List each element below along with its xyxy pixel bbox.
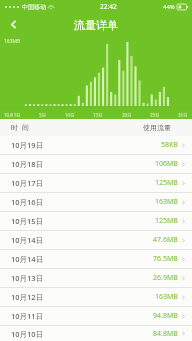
staticText: 10月16日 [11, 197, 44, 207]
staticText: 76.5MB [153, 254, 178, 264]
staticText: 22:42 [100, 2, 117, 11]
staticText: 5日 [39, 112, 47, 118]
button[interactable]: 10月13日 [0, 269, 192, 287]
staticText: 125MB [155, 216, 178, 226]
staticText: 20日 [122, 112, 132, 118]
staticText: 15日 [93, 112, 103, 118]
staticText: 163MB [155, 292, 178, 302]
staticText: 10月15日 [11, 216, 44, 226]
staticText: 中国移动 [22, 3, 46, 11]
staticText: 163MB [4, 38, 21, 45]
button[interactable]: 10月19日 [0, 136, 192, 154]
staticText: 10月11日 [11, 311, 44, 321]
button[interactable]: 10月16日 [0, 193, 192, 211]
staticText: 10日 [65, 112, 75, 118]
staticText: 84.8MB [153, 329, 178, 339]
staticText: 31日 [178, 112, 188, 118]
button[interactable]: 10月11日 [0, 307, 192, 325]
button[interactable]: 10月14日 [0, 250, 192, 268]
button[interactable]: 10月15日 [0, 212, 192, 230]
staticText: 时 间 [11, 123, 29, 133]
staticText: 58KB [161, 140, 178, 150]
staticText: 流量详单 [74, 18, 118, 32]
staticText: 10月12日 [11, 292, 44, 302]
staticText: 使用流量 [143, 123, 171, 132]
button[interactable]: 10月17日 [0, 174, 192, 192]
staticText: 106MB [155, 159, 178, 169]
button[interactable]: 10月18日 [0, 155, 192, 173]
staticText: 10月13日 [11, 273, 44, 283]
button[interactable]: Back [0, 13, 26, 36]
staticText: 10月10日 [11, 329, 44, 339]
staticText: 47.6MB [153, 235, 178, 245]
staticText: 94.8MB [153, 311, 178, 321]
staticText: 125MB [155, 178, 178, 188]
staticText: 10月1日 [4, 112, 21, 118]
staticText: 25日 [150, 112, 160, 118]
staticText: 163MB [155, 197, 178, 207]
staticText: 10月17日 [11, 178, 44, 188]
button[interactable]: 10月14日 [0, 231, 192, 249]
staticText: 10月19日 [11, 140, 44, 150]
button[interactable]: 10月10日 [0, 326, 192, 341]
button[interactable]: 10月12日 [0, 288, 192, 306]
staticText: 26.9MB [153, 273, 178, 283]
staticText: 10月14日 [11, 254, 44, 264]
staticText: 10月18日 [11, 159, 44, 169]
staticText: 10月14日 [11, 235, 44, 245]
staticText: 44% [163, 3, 175, 11]
